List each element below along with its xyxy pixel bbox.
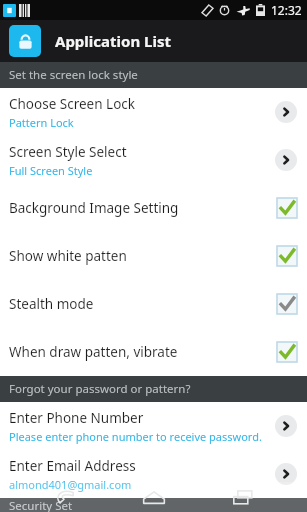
staticText: Please enter phone number to receive pas… xyxy=(9,429,262,444)
button[interactable]: Show white patten xyxy=(0,232,307,280)
staticText: Set the screen lock style xyxy=(9,67,138,83)
staticText: Full Screen Style xyxy=(9,163,93,178)
staticText: Pattern Lock xyxy=(9,115,74,130)
staticText: Screen Style Select xyxy=(9,143,127,161)
button[interactable]: Choose Screen Lock xyxy=(0,88,307,136)
staticText: Security Set xyxy=(9,498,73,512)
staticText: Show white patten xyxy=(9,247,277,265)
staticText: Stealth mode xyxy=(9,295,277,313)
staticText: Application List xyxy=(55,31,171,51)
button[interactable]: When draw patten, vibrate xyxy=(0,328,307,376)
button[interactable]: Back xyxy=(38,482,90,512)
button[interactable]: Recents xyxy=(217,482,269,512)
button[interactable]: Background Image Setting xyxy=(0,184,307,232)
staticText: Enter Phone Number xyxy=(9,409,144,427)
button[interactable]: Stealth mode xyxy=(0,280,307,328)
button[interactable]: Screen Style Select xyxy=(0,136,307,184)
staticText: Choose Screen Lock xyxy=(9,95,136,113)
staticText: When draw patten, vibrate xyxy=(9,343,277,361)
button[interactable]: Home xyxy=(128,482,180,512)
staticText: almond401@gmail.com xyxy=(9,477,132,492)
staticText: Forgot your password or pattern? xyxy=(9,381,191,397)
staticText: 12:32 xyxy=(271,2,302,18)
staticText: Background Image Setting xyxy=(9,199,277,217)
button[interactable]: Enter Email Address xyxy=(0,450,307,498)
button[interactable]: Enter Phone Number xyxy=(0,402,307,450)
staticText: Enter Email Address xyxy=(9,457,136,475)
